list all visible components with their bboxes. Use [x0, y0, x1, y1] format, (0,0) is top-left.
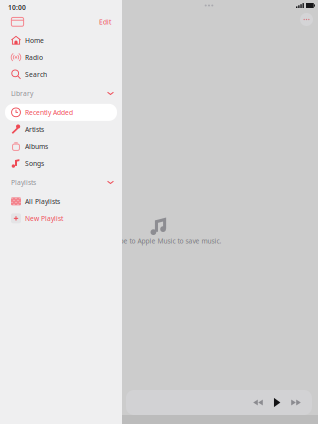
button[interactable]: Home: [0, 32, 122, 49]
button[interactable]: Recently Added: [0, 104, 122, 121]
button[interactable]: Play: [268, 391, 286, 413]
staticText: Subscribe to Apple Music to save music.: [96, 237, 221, 245]
button[interactable]: Radio: [0, 49, 122, 66]
staticText: Playlists: [11, 178, 36, 187]
button[interactable]: Hide Sidebar: [8, 13, 27, 30]
button[interactable]: Songs: [0, 155, 122, 172]
staticText: Library: [11, 89, 33, 98]
button[interactable]: Search: [0, 66, 122, 83]
staticText: Albums: [25, 142, 48, 151]
button[interactable]: Previous Track: [248, 393, 268, 412]
button[interactable]: Albums: [0, 138, 122, 155]
button[interactable]: Next Track: [286, 393, 306, 412]
staticText: Search: [25, 70, 47, 79]
staticText: All Playlists: [25, 197, 60, 206]
button[interactable]: Collapse Library: [104, 88, 117, 98]
button[interactable]: More: [300, 13, 313, 26]
staticText: Artists: [25, 125, 44, 134]
staticText: Recently Added: [25, 108, 73, 117]
staticText: Songs: [25, 159, 44, 168]
staticText: Edit: [99, 17, 111, 26]
button[interactable]: Edit: [96, 14, 114, 29]
button[interactable]: New Playlist: [0, 210, 122, 227]
staticText: Home: [25, 36, 44, 45]
button[interactable]: Artists: [0, 121, 122, 138]
staticText: Radio: [25, 53, 43, 62]
staticText: New Playlist: [25, 214, 63, 223]
button[interactable]: All Playlists: [0, 193, 122, 210]
staticText: 10:00: [8, 3, 26, 12]
button[interactable]: Collapse Playlists: [104, 177, 117, 187]
